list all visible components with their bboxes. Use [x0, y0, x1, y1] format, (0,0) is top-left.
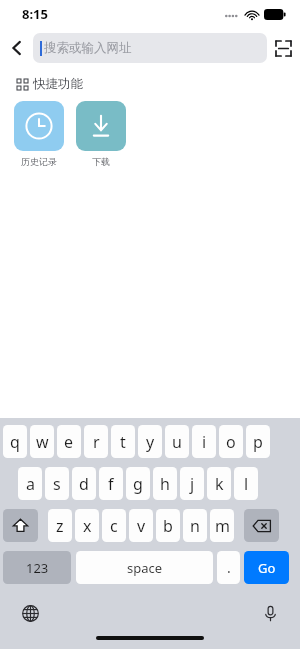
staticText: l [244, 473, 249, 495]
staticText: s [53, 473, 61, 495]
button[interactable]: i [192, 425, 216, 458]
button[interactable]: x [75, 509, 99, 542]
staticText: 8:15 [22, 5, 48, 23]
button[interactable]: p [246, 425, 270, 458]
button[interactable]: Voice input [258, 601, 282, 625]
button[interactable]: j [180, 467, 204, 500]
staticText: r [93, 431, 100, 453]
staticText: 下载 [92, 156, 110, 167]
staticText: v [137, 515, 146, 537]
button[interactable]: . [217, 551, 240, 584]
button[interactable]: h [153, 467, 177, 500]
button[interactable]: 搜索或输入网址 [33, 33, 267, 63]
button[interactable]: d [72, 467, 96, 500]
staticText: w [36, 431, 49, 453]
staticText: d [79, 473, 89, 495]
button[interactable]: a [18, 467, 42, 500]
button[interactable]: 下载 [76, 101, 126, 167]
staticText: a [26, 473, 35, 495]
button[interactable]: g [126, 467, 150, 500]
staticText: m [215, 515, 230, 537]
staticText: 123 [26, 559, 49, 577]
staticText: f [108, 473, 114, 495]
button[interactable]: u [165, 425, 189, 458]
staticText: 历史记录 [21, 156, 57, 167]
staticText: c [110, 515, 118, 537]
staticText: space [127, 559, 163, 577]
button[interactable]: r [84, 425, 108, 458]
button[interactable]: y [138, 425, 162, 458]
staticText: e [64, 431, 74, 453]
button[interactable]: s [45, 467, 69, 500]
button[interactable]: space [76, 551, 213, 584]
staticText: q [10, 431, 20, 453]
button[interactable]: l [234, 467, 258, 500]
staticText: b [163, 515, 173, 537]
button[interactable]: e [57, 425, 81, 458]
button[interactable]: Shift [3, 509, 38, 542]
button[interactable]: 123 [3, 551, 71, 584]
staticText: i [202, 431, 207, 453]
staticText: 搜索或输入网址 [44, 40, 132, 56]
staticText: x [83, 515, 92, 537]
button[interactable]: b [156, 509, 180, 542]
button[interactable]: Back [0, 28, 33, 68]
staticText: z [56, 515, 64, 537]
button[interactable]: 历史记录 [14, 101, 64, 167]
button[interactable]: w [30, 425, 54, 458]
staticText: h [160, 473, 170, 495]
button[interactable]: Go [244, 551, 289, 584]
button[interactable]: q [3, 425, 27, 458]
staticText: g [133, 473, 143, 495]
button[interactable]: k [207, 467, 231, 500]
staticText: y [146, 431, 155, 453]
button[interactable]: c [102, 509, 126, 542]
button[interactable]: n [183, 509, 207, 542]
staticText: . [227, 558, 231, 577]
button[interactable]: Scan QR code [267, 28, 300, 68]
button[interactable]: t [111, 425, 135, 458]
staticText: n [190, 515, 200, 537]
staticText: p [253, 431, 263, 453]
button[interactable]: o [219, 425, 243, 458]
button[interactable]: Switch keyboard language [18, 601, 42, 625]
staticText: j [190, 473, 195, 495]
button[interactable]: m [210, 509, 234, 542]
button[interactable]: v [129, 509, 153, 542]
staticText: Go [258, 559, 276, 577]
button[interactable]: Backspace [244, 509, 279, 542]
staticText: 快捷功能 [33, 76, 83, 92]
staticText: k [215, 473, 224, 495]
staticText: t [120, 431, 126, 453]
staticText: o [226, 431, 236, 453]
button[interactable]: f [99, 467, 123, 500]
button[interactable]: z [48, 509, 72, 542]
staticText: u [172, 431, 182, 453]
